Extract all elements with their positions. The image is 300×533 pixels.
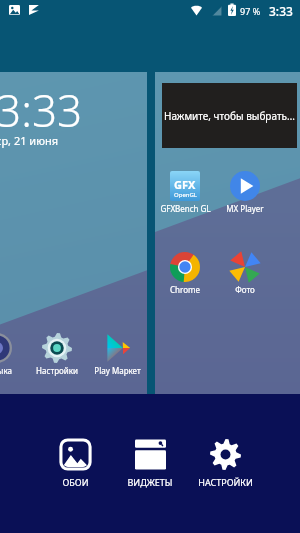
button[interactable]: Widgets <box>110 434 190 493</box>
button[interactable]: Chrome <box>155 252 215 295</box>
button[interactable]: MX Player <box>215 171 275 214</box>
staticText: НАСТРОЙКИ <box>198 476 253 488</box>
staticText: ВИДЖЕТЫ <box>127 476 173 488</box>
button[interactable]: Settings <box>185 434 265 493</box>
staticText: Фото <box>235 284 255 295</box>
staticText: GFX <box>174 177 196 192</box>
staticText: Настройки <box>36 365 78 376</box>
staticText: 13:33 <box>0 80 83 140</box>
staticText: GFXBench GL <box>160 203 211 214</box>
button[interactable]: Фото <box>215 252 275 295</box>
staticText: 97 % <box>240 5 261 17</box>
staticText: Play Маркет <box>94 365 141 376</box>
button[interactable]: 13:33 <box>0 72 147 394</box>
button[interactable]: GFX <box>155 171 215 214</box>
staticText: ОБОИ <box>62 476 89 488</box>
staticText: MX Player <box>226 203 264 214</box>
staticText: Chrome <box>170 284 200 295</box>
staticText: 3:33 <box>269 3 293 19</box>
button[interactable]: Настройки <box>27 333 87 376</box>
staticText: OpenGL <box>174 191 197 199</box>
button[interactable]: Нажмите, чтобы выбрать… <box>162 83 297 148</box>
button[interactable]: Wallpapers <box>35 434 115 493</box>
button[interactable]: Нажмите, чтобы выбрать… <box>155 72 300 394</box>
staticText: Музыка <box>0 365 12 376</box>
staticText: ср, 21 июня <box>0 133 59 148</box>
button[interactable]: Play Маркет <box>87 333 147 376</box>
button[interactable]: Музыка <box>0 333 27 376</box>
staticText: Нажмите, чтобы выбрать… <box>164 109 295 123</box>
